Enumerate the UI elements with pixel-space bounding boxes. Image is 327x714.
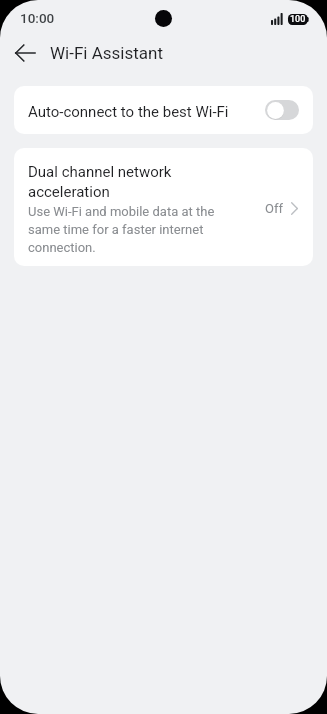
staticText: Dual channel network acceleration — [28, 163, 218, 200]
staticText: 10:00 — [20, 10, 55, 26]
button[interactable]: Dual channel network acceleration — [14, 148, 313, 266]
button[interactable]: Back — [8, 36, 42, 70]
staticText: Auto-connect to the best Wi-Fi — [28, 103, 229, 121]
staticText: Off — [265, 201, 283, 216]
staticText: Wi-Fi Assistant — [50, 43, 163, 63]
button[interactable]: Auto-connect toggle — [265, 100, 299, 120]
staticText: Use Wi-Fi and mobile data at the same ti… — [28, 204, 218, 255]
button[interactable]: Auto-connect to the best Wi-Fi — [14, 86, 313, 134]
staticText: 100 — [290, 14, 306, 25]
